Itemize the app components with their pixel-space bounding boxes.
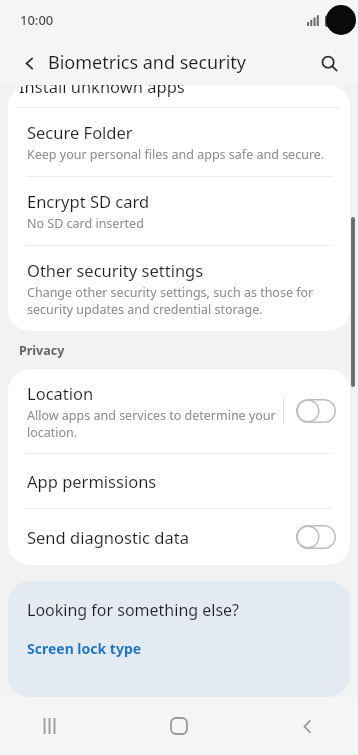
button[interactable]: Back <box>284 703 330 749</box>
staticText: Screen lock type <box>27 639 142 658</box>
staticText: Secure Folder <box>27 121 133 143</box>
staticText: Allow apps and services to determine you… <box>27 407 283 440</box>
staticText: Encrypt SD card <box>27 190 150 212</box>
staticText: Change other security settings, such as … <box>27 284 336 317</box>
staticText: Other security settings <box>27 259 204 281</box>
staticText: 10:00 <box>20 11 54 29</box>
staticText: App permissions <box>27 470 157 492</box>
staticText: Biometrics and security <box>48 50 246 75</box>
button[interactable]: Back <box>14 48 44 78</box>
staticText: Send diagnostic data <box>27 526 189 548</box>
staticText: Location <box>27 382 94 404</box>
button[interactable]: Send diagnostic data <box>8 509 350 565</box>
button[interactable]: Toggle <box>296 525 336 549</box>
staticText: Looking for something else? <box>27 599 240 621</box>
button[interactable]: Encrypt SD card <box>8 177 350 246</box>
button[interactable]: Location <box>8 369 350 454</box>
button[interactable]: App permissions <box>8 454 350 509</box>
button[interactable]: Screen lock type <box>27 634 334 663</box>
staticText: Keep your personal files and apps safe a… <box>27 146 325 163</box>
button[interactable]: Other security settings <box>8 246 350 331</box>
button[interactable]: Install unknown apps <box>8 85 350 107</box>
button[interactable]: Recents <box>28 703 74 749</box>
staticText: No SD card inserted <box>27 215 144 232</box>
staticText: Privacy <box>19 342 65 359</box>
button[interactable]: Home <box>156 703 202 749</box>
button[interactable]: Toggle <box>296 399 336 423</box>
button[interactable]: Search <box>314 48 344 78</box>
button[interactable]: Secure Folder <box>8 108 350 177</box>
staticText: Install unknown apps <box>19 85 185 97</box>
